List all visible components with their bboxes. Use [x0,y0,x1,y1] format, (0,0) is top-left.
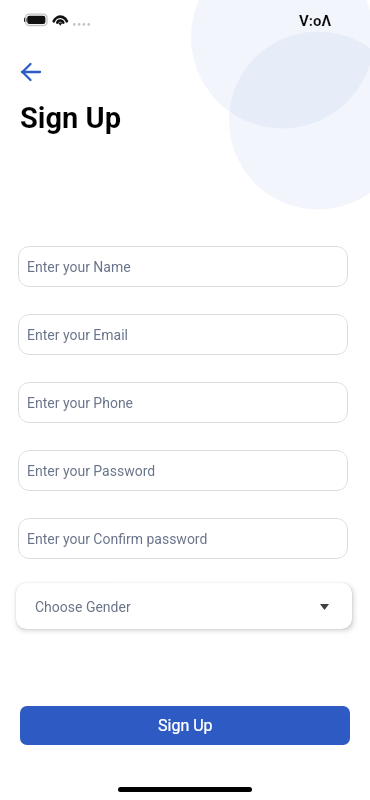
staticText: Enter your Password [27,463,156,479]
button[interactable]: Back [21,63,41,81]
staticText: Choose Gender [35,599,131,615]
button[interactable]: Enter your Password [18,450,348,491]
staticText: V:oΛ [299,12,332,30]
button[interactable]: Enter your Confirm password [18,518,348,559]
button[interactable]: Enter your Email [18,314,348,355]
staticText: Enter your Confirm password [27,531,208,547]
staticText: Sign Up [20,101,121,135]
button[interactable]: Enter your Phone [18,382,348,423]
staticText: Enter your Name [27,259,131,275]
button[interactable]: Enter your Name [18,246,348,287]
staticText: Enter your Email [27,327,129,343]
staticText: Enter your Phone [27,395,134,411]
staticText: Sign Up [158,716,213,735]
button[interactable]: Choose Gender [16,583,352,629]
button[interactable]: Sign Up [20,706,350,745]
